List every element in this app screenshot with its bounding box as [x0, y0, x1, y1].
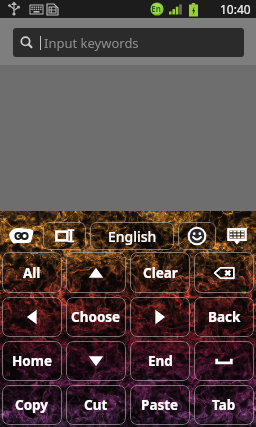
- staticText: Cut: [84, 396, 108, 414]
- staticText: Input keywords: [44, 34, 139, 52]
- button[interactable]: All: [2, 252, 62, 293]
- button[interactable]: Back: [194, 297, 254, 337]
- button[interactable]: Paste: [130, 385, 190, 425]
- button[interactable]: Cut: [66, 385, 126, 425]
- button[interactable]: Choose: [66, 297, 126, 337]
- staticText: English: [108, 227, 157, 246]
- button[interactable]: Home: [2, 341, 62, 381]
- button[interactable]: right: [130, 297, 190, 337]
- button[interactable]: del: [194, 252, 254, 293]
- staticText: Tab: [212, 396, 236, 414]
- staticText: Back: [208, 308, 241, 326]
- staticText: Home: [12, 352, 52, 370]
- button[interactable]: Go: [0, 222, 41, 250]
- button[interactable]: up: [66, 252, 126, 293]
- button[interactable]: Clear: [130, 252, 190, 293]
- staticText: All: [23, 264, 41, 282]
- button[interactable]: End: [130, 341, 190, 381]
- button[interactable]: Emoji: [178, 222, 216, 250]
- staticText: 10:40: [220, 1, 251, 17]
- staticText: En: [151, 3, 161, 14]
- button[interactable]: Copy: [2, 385, 62, 425]
- staticText: Clear: [143, 264, 178, 282]
- button[interactable]: English: [90, 222, 174, 250]
- button[interactable]: space: [194, 341, 254, 381]
- button[interactable]: Tab: [194, 385, 254, 425]
- button[interactable]: down: [66, 341, 126, 381]
- button[interactable]: left: [2, 297, 62, 337]
- button[interactable]: Hide keyboard: [218, 222, 256, 250]
- staticText: Paste: [141, 396, 179, 414]
- button[interactable]: Layout: [43, 222, 86, 250]
- staticText: Choose: [71, 308, 121, 326]
- staticText: Copy: [15, 396, 49, 414]
- staticText: End: [148, 352, 173, 370]
- button[interactable]: Input keywords: [13, 28, 244, 57]
